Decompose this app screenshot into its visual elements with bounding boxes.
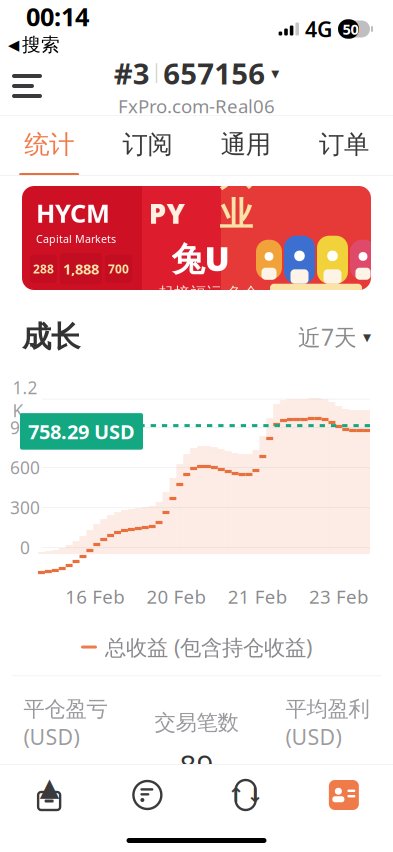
staticText: 一起接福运 兔个吉祥 xyxy=(142,283,259,323)
staticText: 兴业 xyxy=(219,153,252,235)
staticText: 23 Feb xyxy=(309,584,368,609)
staticText: ↓ xyxy=(247,784,264,806)
staticText: 89 xyxy=(179,746,213,785)
staticText: 700 xyxy=(108,261,129,277)
staticText: 24 xyxy=(297,761,331,800)
button[interactable]: 首页 xyxy=(0,767,98,823)
staticText: 900 xyxy=(10,416,40,439)
staticText: 829 xyxy=(26,761,77,800)
staticText: 总收益 (包含持仓收益) xyxy=(105,633,312,661)
staticText: 通用 xyxy=(221,129,271,160)
staticText: 288 xyxy=(33,261,54,277)
staticText: .28 xyxy=(331,773,358,800)
staticText: FxPro.com-Real06 xyxy=(118,94,275,118)
staticText: 21 Feb xyxy=(228,584,287,609)
staticText: 平仓盈亏 (USD) xyxy=(23,694,107,751)
button[interactable]: 近7天 xyxy=(288,316,371,358)
staticText: 00:14 xyxy=(26,0,89,33)
button[interactable]: 通用 xyxy=(196,116,295,176)
staticText: 平均盈利 (USD) xyxy=(285,694,369,751)
staticText: 平均持仓时间 xyxy=(2,831,128,852)
staticText: 兔U xyxy=(171,236,229,280)
staticText: 16 Feb xyxy=(65,584,124,609)
staticText: Capital Markets xyxy=(36,232,116,246)
staticText: HYCM xyxy=(36,196,110,230)
button[interactable]: 订单 xyxy=(295,116,393,176)
button[interactable]: 账户 xyxy=(295,767,393,823)
staticText: ▾ xyxy=(363,328,371,346)
button[interactable]: HYCM 新年活动广告 xyxy=(0,176,393,290)
staticText: 成长 xyxy=(22,319,80,355)
staticText: 0 xyxy=(20,536,30,559)
button[interactable]: 信号 xyxy=(98,767,196,823)
button[interactable]: 菜单 xyxy=(0,64,54,108)
staticText: 600 xyxy=(10,456,40,479)
staticText: ◀ xyxy=(8,36,19,53)
button[interactable]: 交易 xyxy=(196,767,295,823)
staticText: 1,888 xyxy=(63,259,99,278)
button[interactable]: 统计 xyxy=(0,116,98,176)
staticText: 20 Feb xyxy=(146,584,205,609)
button[interactable]: 订阅 xyxy=(98,116,196,176)
staticText: 758.29 USD xyxy=(28,418,135,445)
staticText: HAPPY xyxy=(148,157,216,231)
staticText: 300 xyxy=(10,496,40,519)
staticText: ▲ xyxy=(40,773,59,801)
staticText: 订单 xyxy=(319,129,369,160)
staticText: 统计 xyxy=(24,129,74,160)
staticText: 657156 xyxy=(163,54,265,93)
staticText: 胜率 (%) xyxy=(157,830,235,852)
staticText: 4G xyxy=(305,15,332,43)
staticText: ↑ xyxy=(228,784,245,806)
staticText: 1.2K xyxy=(12,376,37,422)
staticText: ▾ xyxy=(271,64,279,82)
staticText: #3 xyxy=(114,54,150,93)
button[interactable]: #3 xyxy=(104,50,289,122)
staticText: 近7天 xyxy=(298,322,357,352)
staticText: 搜索 xyxy=(22,33,60,56)
staticText: 订阅 xyxy=(122,129,172,160)
staticText: 50 xyxy=(342,19,358,39)
staticText: 交易笔数 xyxy=(154,709,238,736)
